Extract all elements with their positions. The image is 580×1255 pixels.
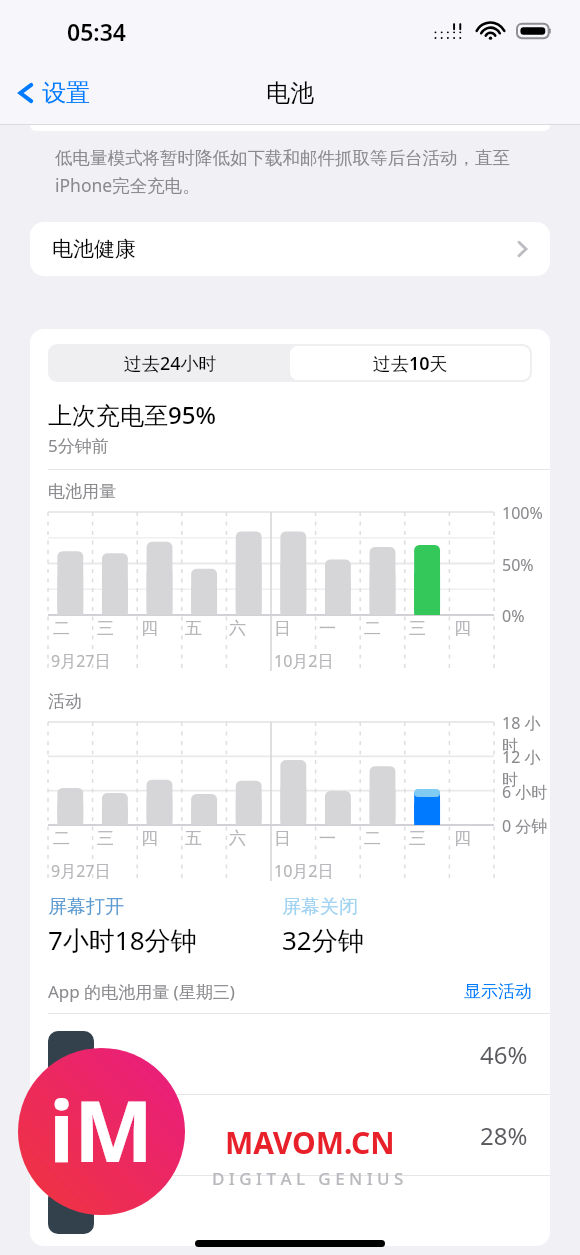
staticText: 设置 (42, 78, 90, 108)
staticText: 一 (319, 828, 336, 849)
staticText: 五 (185, 828, 202, 849)
staticText: 10月2日 (274, 860, 334, 882)
other: Back (16, 78, 36, 108)
staticText: D I G I T A L G E N I U S (212, 1167, 404, 1190)
staticText: 05:34 (67, 16, 126, 47)
staticText: 50% (502, 554, 534, 576)
staticText: 0 分钟 (502, 815, 548, 837)
staticText: 9月27日 (51, 650, 111, 672)
staticText: 六 (229, 618, 246, 639)
staticText: 四 (141, 828, 158, 849)
staticText: 四 (141, 618, 158, 639)
staticText: 电池健康 (52, 236, 136, 262)
staticText: 电池用量 (48, 481, 116, 502)
staticText: iM (49, 1072, 154, 1186)
staticText: 二 (53, 828, 70, 849)
button[interactable]: 46% (30, 1014, 550, 1094)
staticText: 六 (229, 828, 246, 849)
staticText: 日 (274, 618, 291, 639)
button[interactable] (30, 1176, 550, 1246)
button[interactable]: 过去10天 (290, 346, 530, 380)
staticText: 100% (502, 502, 543, 524)
staticText: 9月27日 (51, 860, 111, 882)
staticText: 显示活动 (464, 981, 532, 1002)
staticText: 四 (454, 618, 471, 639)
staticText: 0% (502, 605, 525, 627)
staticText: 二 (364, 828, 381, 849)
staticText: MAVOM.CN (225, 1122, 395, 1163)
staticText: 二 (53, 618, 70, 639)
staticText: 电池 (266, 78, 314, 108)
staticText: 一 (319, 618, 336, 639)
staticText: 三 (97, 618, 114, 639)
button[interactable]: 电池健康 (30, 222, 550, 276)
staticText: 活动 (48, 691, 82, 712)
button[interactable]: Back (16, 61, 90, 125)
staticText: 上次充电至95% (48, 398, 216, 431)
staticText: 三 (97, 828, 114, 849)
staticText: 10月2日 (274, 650, 334, 672)
staticText: 过去24小时 (124, 351, 217, 376)
staticText: 46% (480, 1038, 528, 1071)
staticText: 日 (274, 828, 291, 849)
staticText: 7小时18分钟 (48, 922, 197, 958)
staticText: 5分钟前 (48, 434, 109, 457)
staticText: 屏幕打开 (48, 895, 124, 919)
button[interactable]: 显示活动 (464, 981, 532, 1002)
button[interactable]: 28% (30, 1095, 550, 1175)
staticText: 28% (480, 1119, 528, 1152)
staticText: 屏幕关闭 (282, 895, 358, 919)
staticText: App 的电池用量 (星期三) (48, 980, 235, 1003)
staticText: 6 小时 (502, 781, 548, 803)
staticText: 低电量模式将暂时降低如下载和邮件抓取等后台活动，直至 iPhone完全充电。 (55, 147, 510, 197)
staticText: 五 (185, 618, 202, 639)
staticText: 12 小时 (502, 746, 550, 790)
staticText: 四 (454, 828, 471, 849)
staticText: 三 (409, 828, 426, 849)
staticText: 过去10天 (373, 351, 448, 376)
staticText: 三 (409, 618, 426, 639)
staticText: 18 小时 (502, 712, 550, 756)
staticText: 32分钟 (282, 922, 364, 958)
button[interactable]: 过去24小时 (50, 346, 290, 380)
staticText: 二 (364, 618, 381, 639)
